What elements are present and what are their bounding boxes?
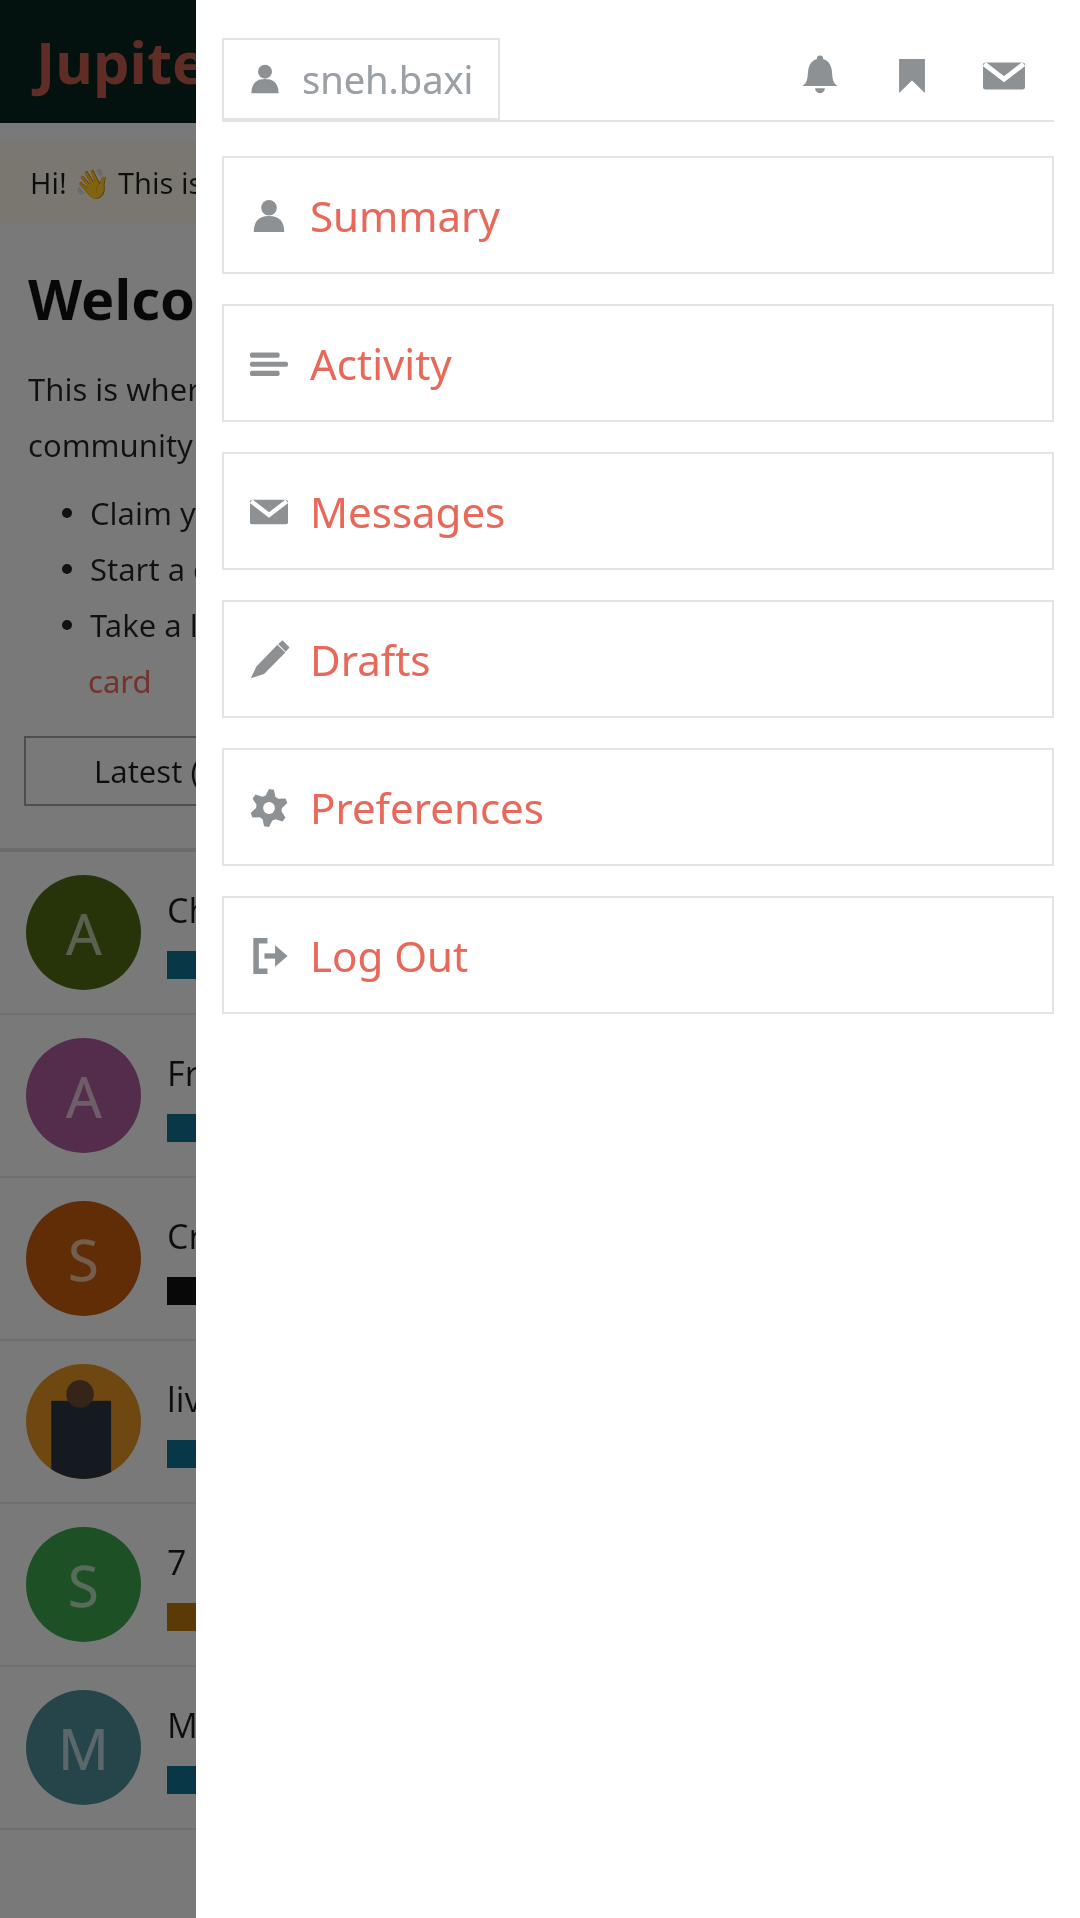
- button[interactable]: Activity: [222, 304, 1054, 422]
- staticText: Jupiter: [36, 22, 233, 101]
- button[interactable]: Notifications: [774, 30, 866, 122]
- button[interactable]: Log Out: [222, 896, 1054, 1014]
- button[interactable]: Bookmarks: [866, 30, 958, 122]
- button[interactable]: Summary: [222, 156, 1054, 274]
- button[interactable]: Messages: [958, 30, 1050, 122]
- staticText: Meet the team: [167, 1702, 401, 1748]
- staticText: Preferences: [310, 779, 544, 836]
- staticText: A: [66, 895, 102, 971]
- staticText: Hi! 👋 This is a place to share ideas and…: [30, 163, 670, 202]
- staticText: Summary: [310, 187, 500, 244]
- button[interactable]: Messages: [222, 452, 1054, 570]
- staticText: Welcome: [28, 260, 284, 336]
- staticText: This is where you can chat with the comm…: [28, 368, 536, 466]
- staticText: 7 useful tips: [167, 1539, 361, 1585]
- staticText: Front-end stack: [167, 1050, 415, 1096]
- staticText: M: [58, 1710, 109, 1786]
- staticText: Latest (59): [94, 750, 245, 792]
- staticText: Choosing colour: [167, 887, 428, 933]
- staticText: sneh.baxi: [302, 53, 474, 105]
- staticText: Creating a new: [167, 1213, 407, 1259]
- button[interactable]: Drafts: [222, 600, 1054, 718]
- staticText: S: [68, 1221, 99, 1297]
- staticText: Activity: [310, 335, 452, 392]
- staticText: card: [88, 660, 152, 702]
- staticText: Messages: [310, 483, 506, 540]
- button[interactable]: sneh.baxi: [222, 38, 500, 120]
- staticText: live session: [167, 1376, 349, 1422]
- staticText: Drafts: [310, 631, 431, 688]
- staticText: Claim your username: [90, 492, 402, 534]
- staticText: Take a look around: [90, 604, 366, 646]
- staticText: Start a conversation: [90, 548, 382, 590]
- staticText: S: [68, 1547, 99, 1623]
- staticText: Log Out: [310, 927, 469, 984]
- staticText: A: [66, 1058, 102, 1134]
- button[interactable]: Preferences: [222, 748, 1054, 866]
